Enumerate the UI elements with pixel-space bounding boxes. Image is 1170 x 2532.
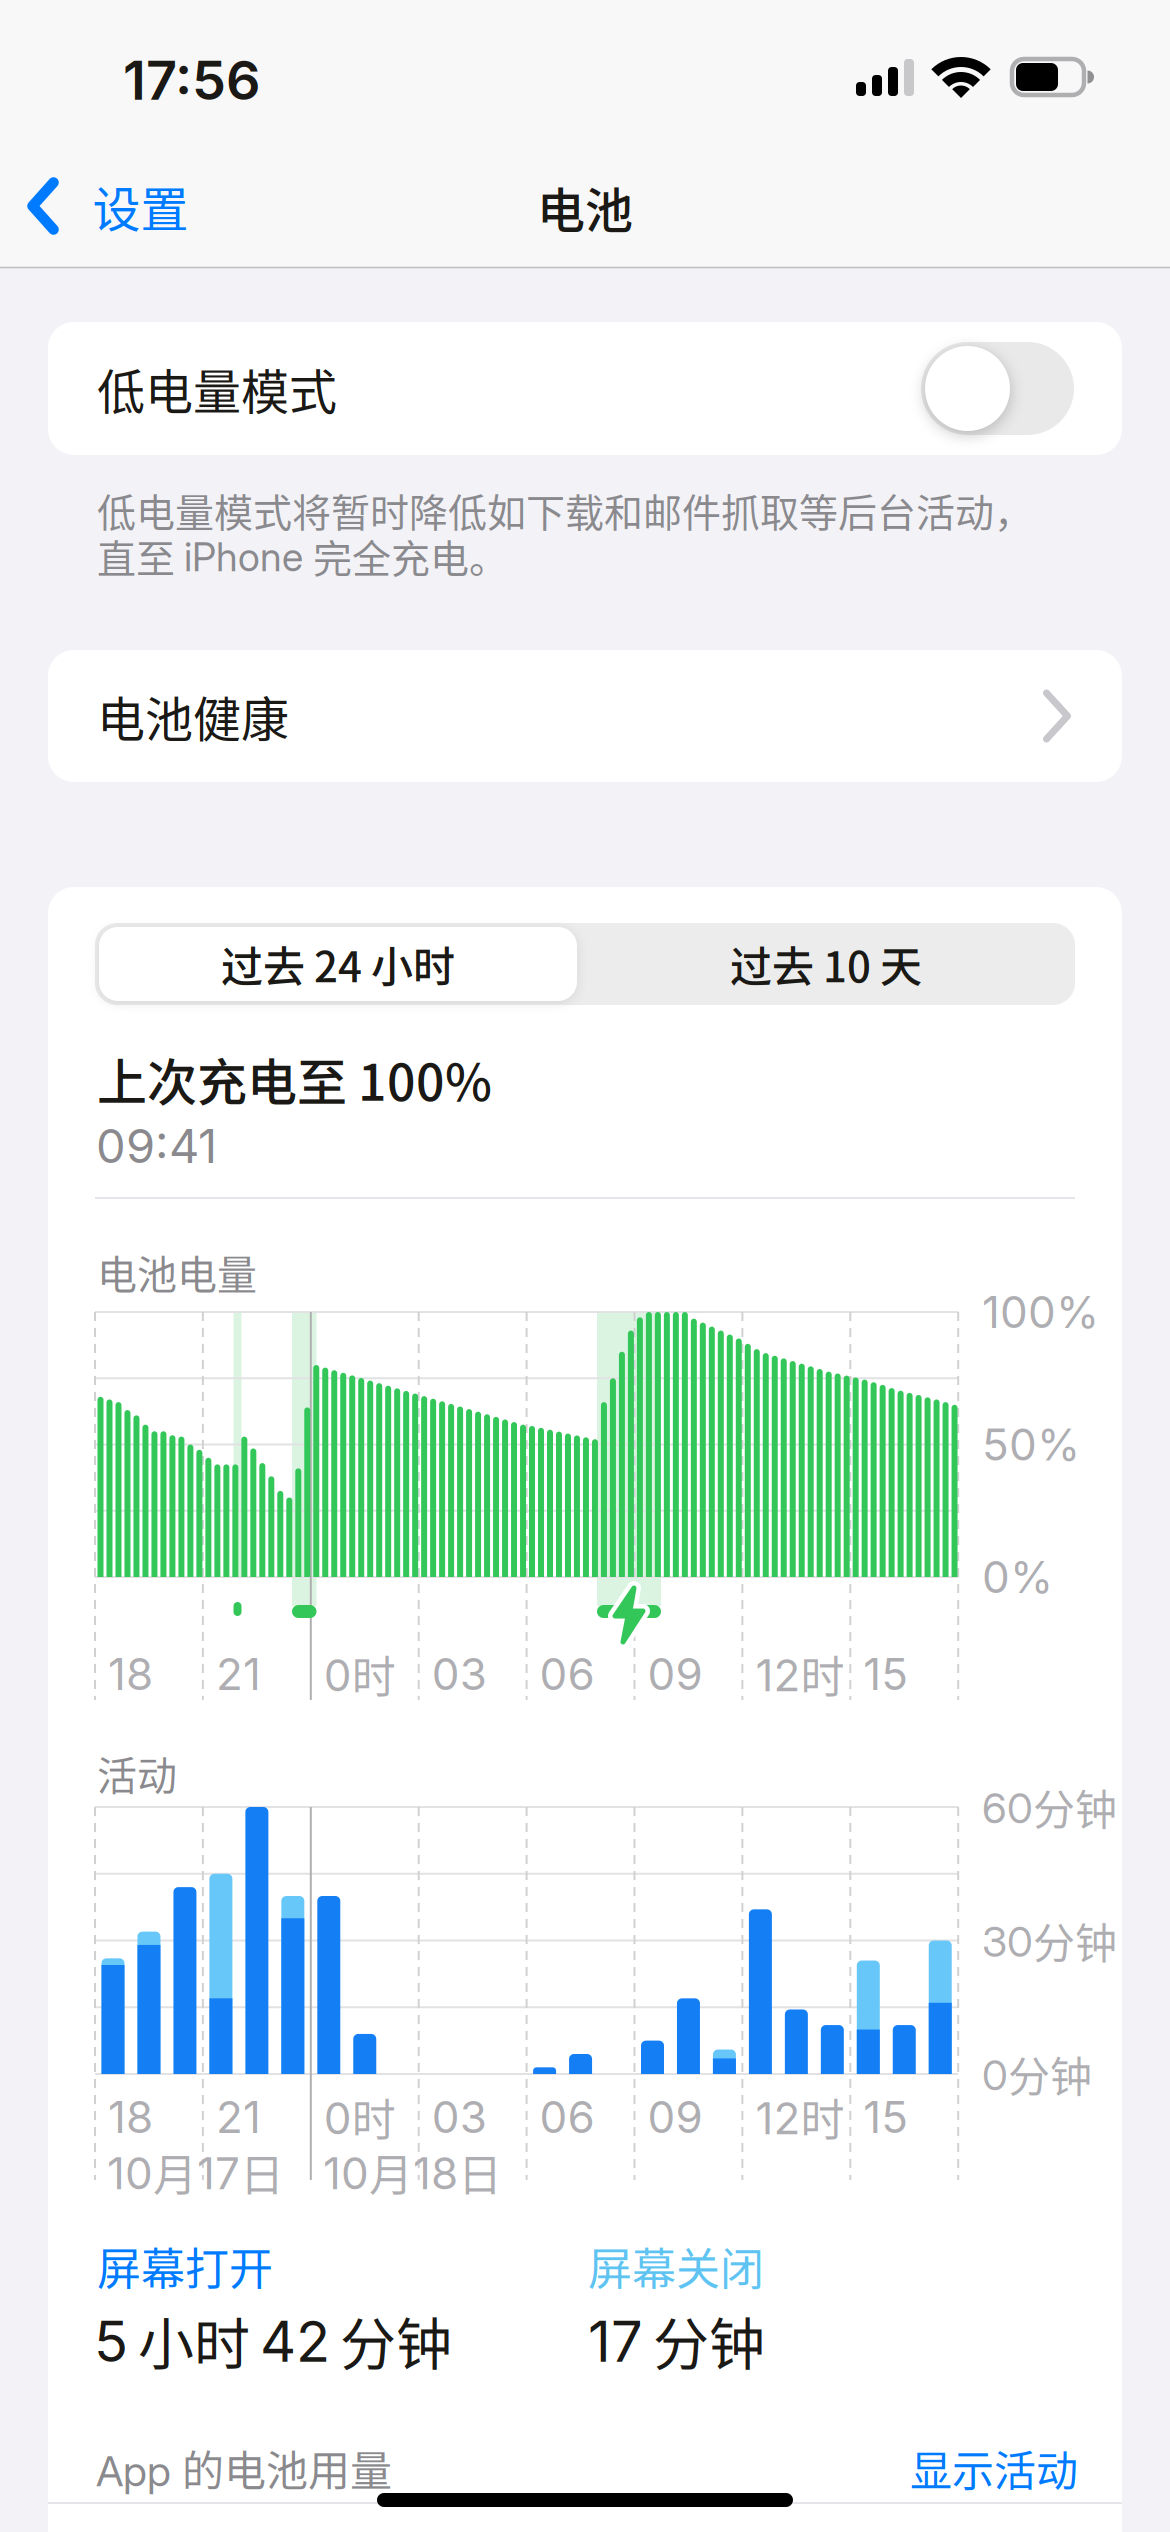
staticText: 17 分钟 [588, 2299, 765, 2381]
staticText: 电池电量 [97, 1243, 257, 1301]
staticText: 21 [216, 1647, 261, 1701]
staticText: 设置 [92, 171, 188, 241]
staticText: App 的电池用量 [96, 2438, 392, 2498]
staticText: 15 [863, 2090, 908, 2144]
button[interactable]: 设置 [27, 171, 188, 241]
staticText: 09 [647, 1647, 702, 1701]
button[interactable]: 过去 24 小时 [95, 923, 581, 1005]
staticText: 03 [432, 1647, 487, 1701]
staticText: 60分钟 [982, 1777, 1117, 1837]
staticText: 15 [863, 1647, 908, 1701]
staticText: 100% [982, 1285, 1099, 1339]
staticText: 12时 [755, 1642, 844, 1706]
button[interactable]: 过去 10 天 [583, 923, 1069, 1005]
staticText: 09:41 [96, 1118, 217, 1174]
staticText: 显示活动 [910, 2438, 1078, 2498]
staticText: 0时 [324, 2085, 396, 2149]
staticText: 09 [647, 2090, 702, 2144]
staticText: 21 [216, 2090, 261, 2144]
staticText: 低电量模式将暂时降低如下载和邮件抓取等后台活动， [97, 482, 1033, 538]
staticText: 06 [540, 1647, 595, 1701]
staticText: 屏幕关闭 [588, 2234, 764, 2298]
staticText: 上次充电至 100% [97, 1043, 492, 1115]
staticText: 过去 10 天 [730, 934, 922, 994]
staticText: 10月17日 [107, 2140, 284, 2204]
staticText: 10月18日 [323, 2140, 502, 2204]
staticText: 过去 24 小时 [221, 934, 455, 994]
staticText: 12时 [755, 2085, 844, 2149]
staticText: 03 [432, 2090, 487, 2144]
staticText: 18 [108, 2090, 153, 2144]
staticText: 电池 [537, 172, 633, 242]
staticText: 17:56 [123, 47, 261, 113]
staticText: 0时 [324, 1642, 396, 1706]
staticText: 0分钟 [982, 2044, 1092, 2104]
staticText: 06 [540, 2090, 595, 2144]
staticText: 电池健康 [97, 681, 289, 751]
staticText: 活动 [97, 1744, 177, 1802]
staticText: 50% [982, 1418, 1080, 1471]
staticText: 0% [982, 1550, 1053, 1604]
button[interactable]: 电池健康 [48, 650, 1122, 782]
staticText: 18 [108, 1647, 153, 1701]
staticText: 低电量模式 [97, 354, 337, 423]
staticText: 屏幕打开 [97, 2234, 273, 2298]
staticText: 30分钟 [982, 1910, 1117, 1971]
button[interactable]: 显示活动 [910, 2438, 1078, 2498]
staticText: 5 小时 42 分钟 [94, 2299, 452, 2381]
button[interactable]: 低电量模式 [921, 342, 1074, 435]
staticText: 直至 iPhone 完全充电。 [97, 528, 508, 584]
